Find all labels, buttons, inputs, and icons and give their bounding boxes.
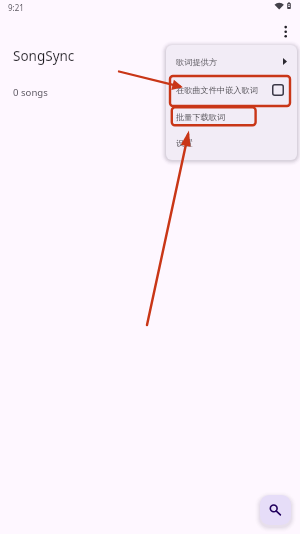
staticText: 批量下载歌词 (176, 112, 226, 122)
button[interactable]: 批量下载歌词 (166, 104, 297, 130)
staticText: 在歌曲文件中嵌入歌词 (176, 85, 258, 95)
button[interactable]: Search (260, 495, 291, 525)
staticText: 设置 (176, 138, 193, 148)
staticText: SongSync (13, 47, 75, 65)
button[interactable]: More options (274, 20, 295, 41)
button[interactable]: 设置 (166, 130, 297, 156)
staticText: 0 songs (13, 86, 48, 99)
button[interactable]: 在歌曲文件中嵌入歌词 (166, 76, 297, 103)
button[interactable]: 歌词提供方 (166, 48, 297, 75)
staticText: 9:21 (8, 2, 24, 13)
staticText: 歌词提供方 (176, 57, 217, 67)
